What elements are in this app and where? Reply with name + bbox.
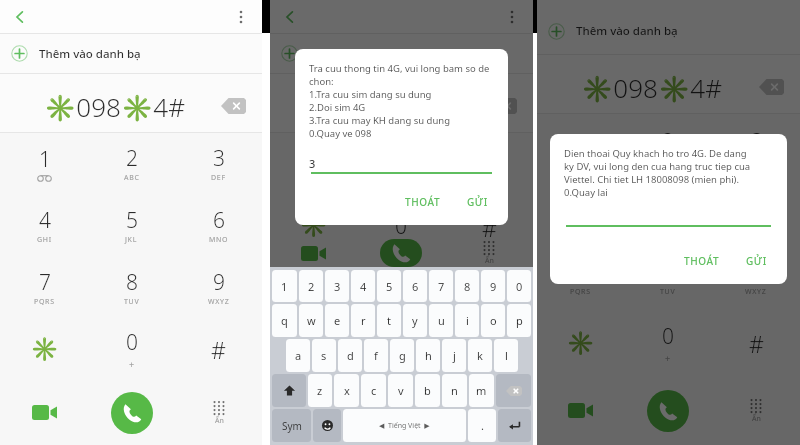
button[interactable]: w [299,304,323,337]
button[interactable]: 4 [351,270,375,302]
button[interactable]: GỬI [740,251,773,271]
button[interactable]: 5 [377,270,401,302]
button[interactable]: Back [6,3,34,31]
button[interactable]: THOÁT [399,192,447,212]
button[interactable]: Call [624,376,712,445]
button[interactable]: y [403,304,427,337]
button[interactable]: b [415,374,440,407]
button[interactable]: i [455,304,479,337]
button[interactable]: # [712,310,800,376]
button[interactable]: t [377,304,401,337]
button[interactable]: h [416,339,440,372]
button[interactable]: 6 [445,159,533,185]
button[interactable]: More options [499,4,525,30]
button[interactable]: More options [228,4,254,30]
button[interactable]: 2 [624,114,712,179]
button[interactable]: 7 [0,256,88,318]
button[interactable]: 3 [175,133,262,194]
button[interactable]: s [312,339,336,372]
button[interactable]: k [468,339,492,372]
button[interactable]: Sym [272,409,311,442]
button[interactable]: r [351,304,375,337]
button[interactable]: Thêm vào danh bạ [0,34,262,73]
button[interactable]: 5 [357,159,445,185]
button[interactable]: 7 [429,270,453,302]
button[interactable]: ✳ [270,212,357,239]
button[interactable]: 4 [0,194,88,256]
button[interactable]: j [442,339,466,372]
button[interactable]: Back [276,3,304,31]
button[interactable]: 1 [272,270,297,302]
button[interactable]: 4 [270,159,357,185]
button[interactable]: ✳ [0,318,88,380]
button[interactable]: 5 [88,194,175,256]
button[interactable]: GỬI [461,192,494,212]
button[interactable]: 3 [712,114,800,179]
button[interactable]: f [364,339,388,372]
button[interactable]: Hide keypad [445,239,533,267]
button[interactable]: 6 [175,194,262,256]
button[interactable]: 1 [537,114,624,179]
button[interactable]: 6 [403,270,427,302]
button[interactable]: Video call [537,376,624,445]
button[interactable]: 1 [0,133,88,194]
button[interactable]: 2 [299,270,323,302]
button[interactable]: 0 [507,270,531,302]
button[interactable]: Backspace [496,374,531,407]
button[interactable]: 0 [357,212,445,239]
button[interactable]: 6 [712,179,800,244]
button[interactable]: v [388,374,413,407]
button[interactable]: Call [88,380,175,445]
button[interactable]: 8 [624,244,712,310]
button[interactable]: Hide keypad [175,380,262,445]
button[interactable]: Delete [216,93,250,119]
button[interactable]: Hide keypad [712,376,800,445]
button[interactable]: ◀ Tiếng Việt ▶ [343,409,466,442]
button[interactable]: q [272,304,297,337]
button[interactable]: Call [357,239,445,267]
button[interactable]: 7 [270,185,357,212]
button[interactable]: 9 [712,244,800,310]
button[interactable]: Video call [0,380,88,445]
button[interactable]: p [507,304,531,337]
button[interactable]: 0 [88,318,175,380]
button[interactable]: 9 [445,185,533,212]
button[interactable]: e [325,304,349,337]
button[interactable]: Thêm vào danh bạ [270,34,533,73]
button[interactable]: 8 [88,256,175,318]
button[interactable]: Delete [487,93,521,119]
button[interactable]: ✳ [537,310,624,376]
button[interactable]: 1 [270,133,357,159]
button[interactable]: z [308,374,332,407]
button[interactable]: o [481,304,505,337]
button[interactable]: l [494,339,518,372]
button[interactable]: m [469,374,494,407]
button[interactable]: Video call [270,239,357,267]
button[interactable]: Delete [754,74,788,100]
button[interactable]: 5 [624,179,712,244]
button[interactable]: a [286,339,310,372]
button[interactable]: 8 [455,270,479,302]
button[interactable]: u [429,304,453,337]
button[interactable]: 8 [357,185,445,212]
button[interactable]: g [390,339,414,372]
button[interactable]: 3 [325,270,349,302]
button[interactable]: 3 [445,133,533,159]
button[interactable]: # [445,212,533,239]
button[interactable]: THOÁT [678,251,726,271]
button[interactable]: 7 [537,244,624,310]
button[interactable]: n [442,374,467,407]
button[interactable]: Enter [498,409,531,442]
button[interactable]: Thêm vào danh bạ [537,8,800,54]
button[interactable]: d [338,339,362,372]
button[interactable]: 0 [624,310,712,376]
button[interactable]: 2 [88,133,175,194]
button[interactable]: x [334,374,359,407]
button[interactable]: c [361,374,386,407]
button[interactable]: . [468,409,496,442]
button[interactable]: Shift [272,374,306,407]
button[interactable]: # [175,318,262,380]
button[interactable]: Emoji [313,409,341,442]
button[interactable]: 2 [357,133,445,159]
button[interactable]: 9 [175,256,262,318]
